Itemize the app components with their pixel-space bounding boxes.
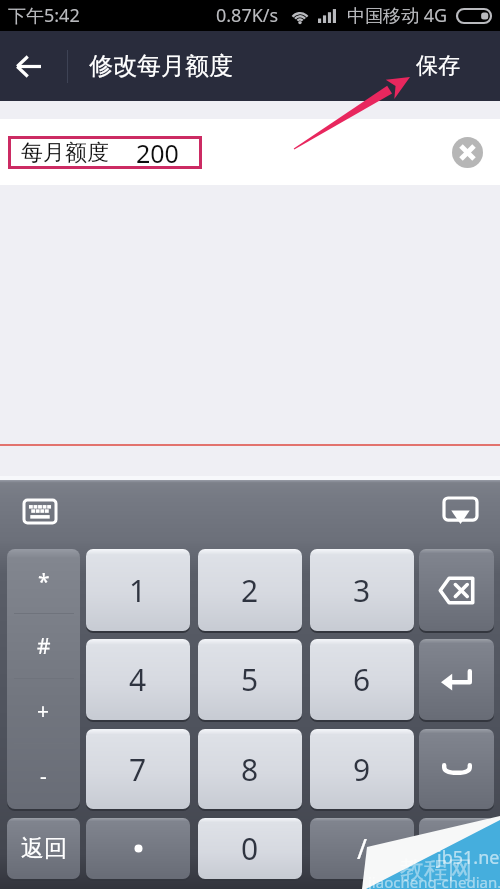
staticText: 3 (353, 570, 371, 611)
staticText: 1 (129, 570, 147, 611)
button[interactable]: # (7, 614, 80, 679)
button[interactable]: 4 (86, 639, 190, 720)
button[interactable]: 8 (198, 729, 302, 809)
button[interactable]: Hide keyboard (444, 498, 477, 524)
button[interactable]: * (7, 549, 80, 614)
staticText: 教程网 (400, 855, 472, 885)
button[interactable]: 0 (198, 818, 302, 879)
staticText: # (37, 632, 51, 661)
staticText: jb51.net (437, 845, 500, 870)
button[interactable]: More (419, 818, 494, 879)
staticText: * (38, 567, 50, 596)
staticText: 9 (353, 749, 371, 790)
button[interactable]: 6 (310, 639, 414, 720)
staticText: 2 (241, 570, 259, 611)
button[interactable]: - (7, 744, 80, 809)
staticText: 0 (241, 828, 259, 869)
button[interactable]: Enter (419, 639, 494, 720)
staticText: 8 (241, 749, 259, 790)
button[interactable]: Switch input method (24, 500, 56, 523)
staticText: 200 (136, 136, 179, 169)
staticText: + (37, 697, 50, 726)
button[interactable]: Space (419, 729, 494, 809)
button[interactable] (86, 818, 190, 879)
staticText: 0.87K/s (216, 3, 279, 28)
staticText: 每月额度 (21, 139, 109, 167)
staticText: - (40, 762, 47, 791)
staticText: 5 (241, 659, 259, 700)
button[interactable]: + (7, 679, 80, 744)
staticText: 返回 (21, 834, 67, 863)
staticText: 修改每月额度 (89, 51, 233, 81)
button[interactable]: Back (0, 31, 60, 101)
button[interactable]: 返回 (7, 818, 80, 879)
button[interactable]: 7 (86, 729, 190, 809)
staticText: 下午5:42 (8, 3, 80, 28)
button[interactable]: 每月额度 (8, 136, 202, 169)
button[interactable]: / (310, 818, 414, 879)
staticText: 保存 (416, 52, 460, 80)
button[interactable]: 5 (198, 639, 302, 720)
staticText: 6 (353, 659, 371, 700)
button[interactable]: Backspace (419, 549, 494, 631)
button[interactable]: 3 (310, 549, 414, 631)
button[interactable]: 2 (198, 549, 302, 631)
button[interactable]: 1 (86, 549, 190, 631)
staticText: 中国移动 4G (347, 3, 448, 28)
staticText: 4 (129, 659, 147, 700)
button[interactable]: 保存 (396, 38, 500, 94)
button[interactable]: 9 (310, 729, 414, 809)
button[interactable]: Clear (452, 137, 483, 168)
staticText: 7 (129, 749, 147, 790)
staticText: / (357, 830, 368, 867)
staticText: jiaocheng-chedian.com (368, 872, 500, 889)
